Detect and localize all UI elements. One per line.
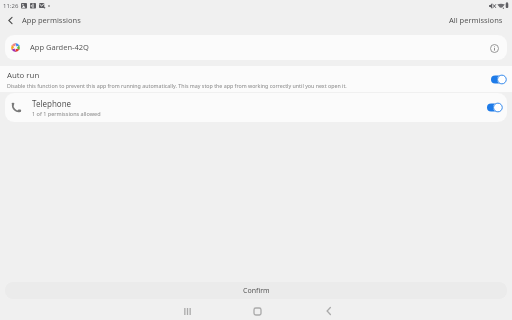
staticText: All permissions	[449, 15, 503, 25]
staticText: Auto run	[7, 70, 40, 81]
button[interactable]: Toggle	[486, 74, 506, 85]
button[interactable]: Recent apps	[151, 301, 221, 320]
staticText: App Garden-42Q	[30, 42, 89, 52]
button[interactable]: Back	[0, 10, 20, 30]
button[interactable]: Home	[221, 301, 292, 320]
button[interactable]: Back	[292, 301, 363, 320]
staticText: App permissions	[22, 15, 81, 25]
staticText: Telephone	[32, 98, 72, 109]
staticText: Confirm	[243, 286, 270, 296]
staticText: 11:26	[3, 2, 19, 10]
button[interactable]: All permissions	[440, 11, 512, 29]
button[interactable]: App info	[485, 39, 503, 57]
staticText: Disable this function to prevent this ap…	[7, 82, 347, 89]
button[interactable]: Toggle	[482, 102, 502, 113]
staticText: 1 of 1 permissions allowed	[32, 110, 101, 117]
button[interactable]: App Garden-42Q	[5, 35, 507, 60]
button[interactable]: Telephone	[5, 93, 507, 122]
button[interactable]: Confirm	[5, 282, 507, 299]
